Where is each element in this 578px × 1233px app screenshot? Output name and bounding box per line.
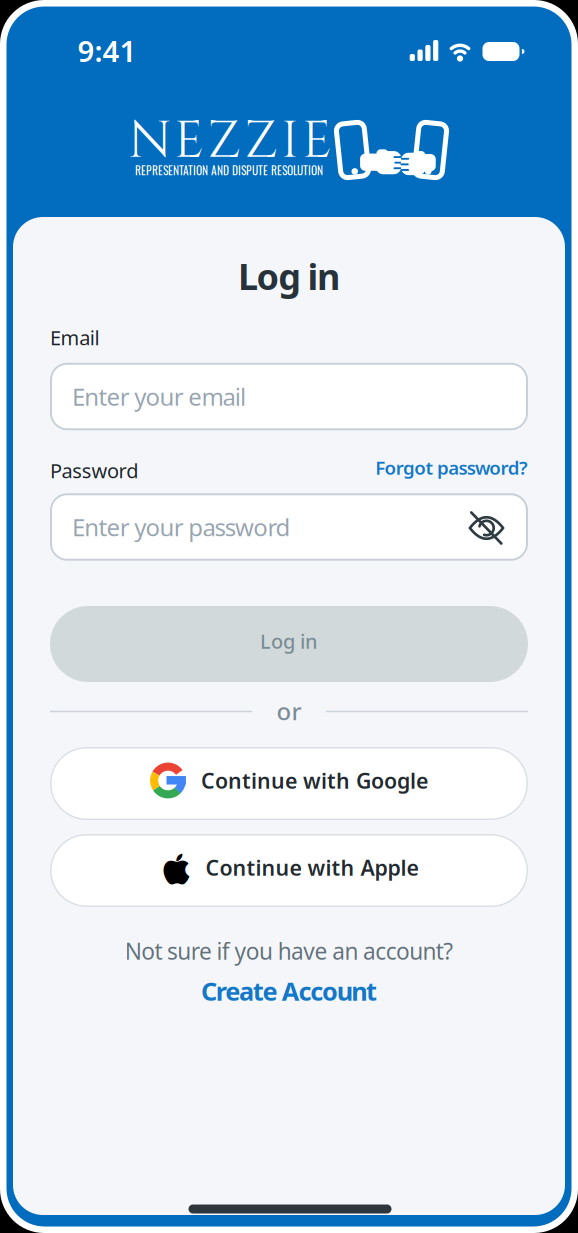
staticText: Continue with Google <box>201 766 428 795</box>
staticText: Create Account <box>201 974 377 1008</box>
staticText: Email <box>50 324 99 351</box>
staticText: Log in <box>260 628 318 654</box>
button[interactable]: Forgot password? <box>375 455 528 480</box>
button[interactable]: Log in <box>50 606 528 682</box>
staticText:  <box>163 854 189 887</box>
staticText: NEZZIE <box>128 106 332 176</box>
staticText: Not sure if you have an account? <box>125 936 453 966</box>
staticText: Enter your password <box>72 511 291 543</box>
staticText: Password <box>50 457 138 484</box>
button[interactable]: Create Account <box>201 974 377 1008</box>
staticText: or <box>276 695 301 727</box>
staticText: Enter your email <box>72 381 246 412</box>
staticText: Forgot password? <box>375 455 528 480</box>
button[interactable]:  <box>50 834 528 907</box>
button[interactable]: Continue with Google <box>50 747 528 820</box>
staticText: 9:41 <box>77 31 136 70</box>
button[interactable]: Show password <box>467 514 505 542</box>
staticText: Log in <box>238 252 340 300</box>
staticText: REPRESENTATION AND DISPUTE RESOLUTION <box>135 161 323 178</box>
staticText: Continue with Apple <box>205 853 418 882</box>
